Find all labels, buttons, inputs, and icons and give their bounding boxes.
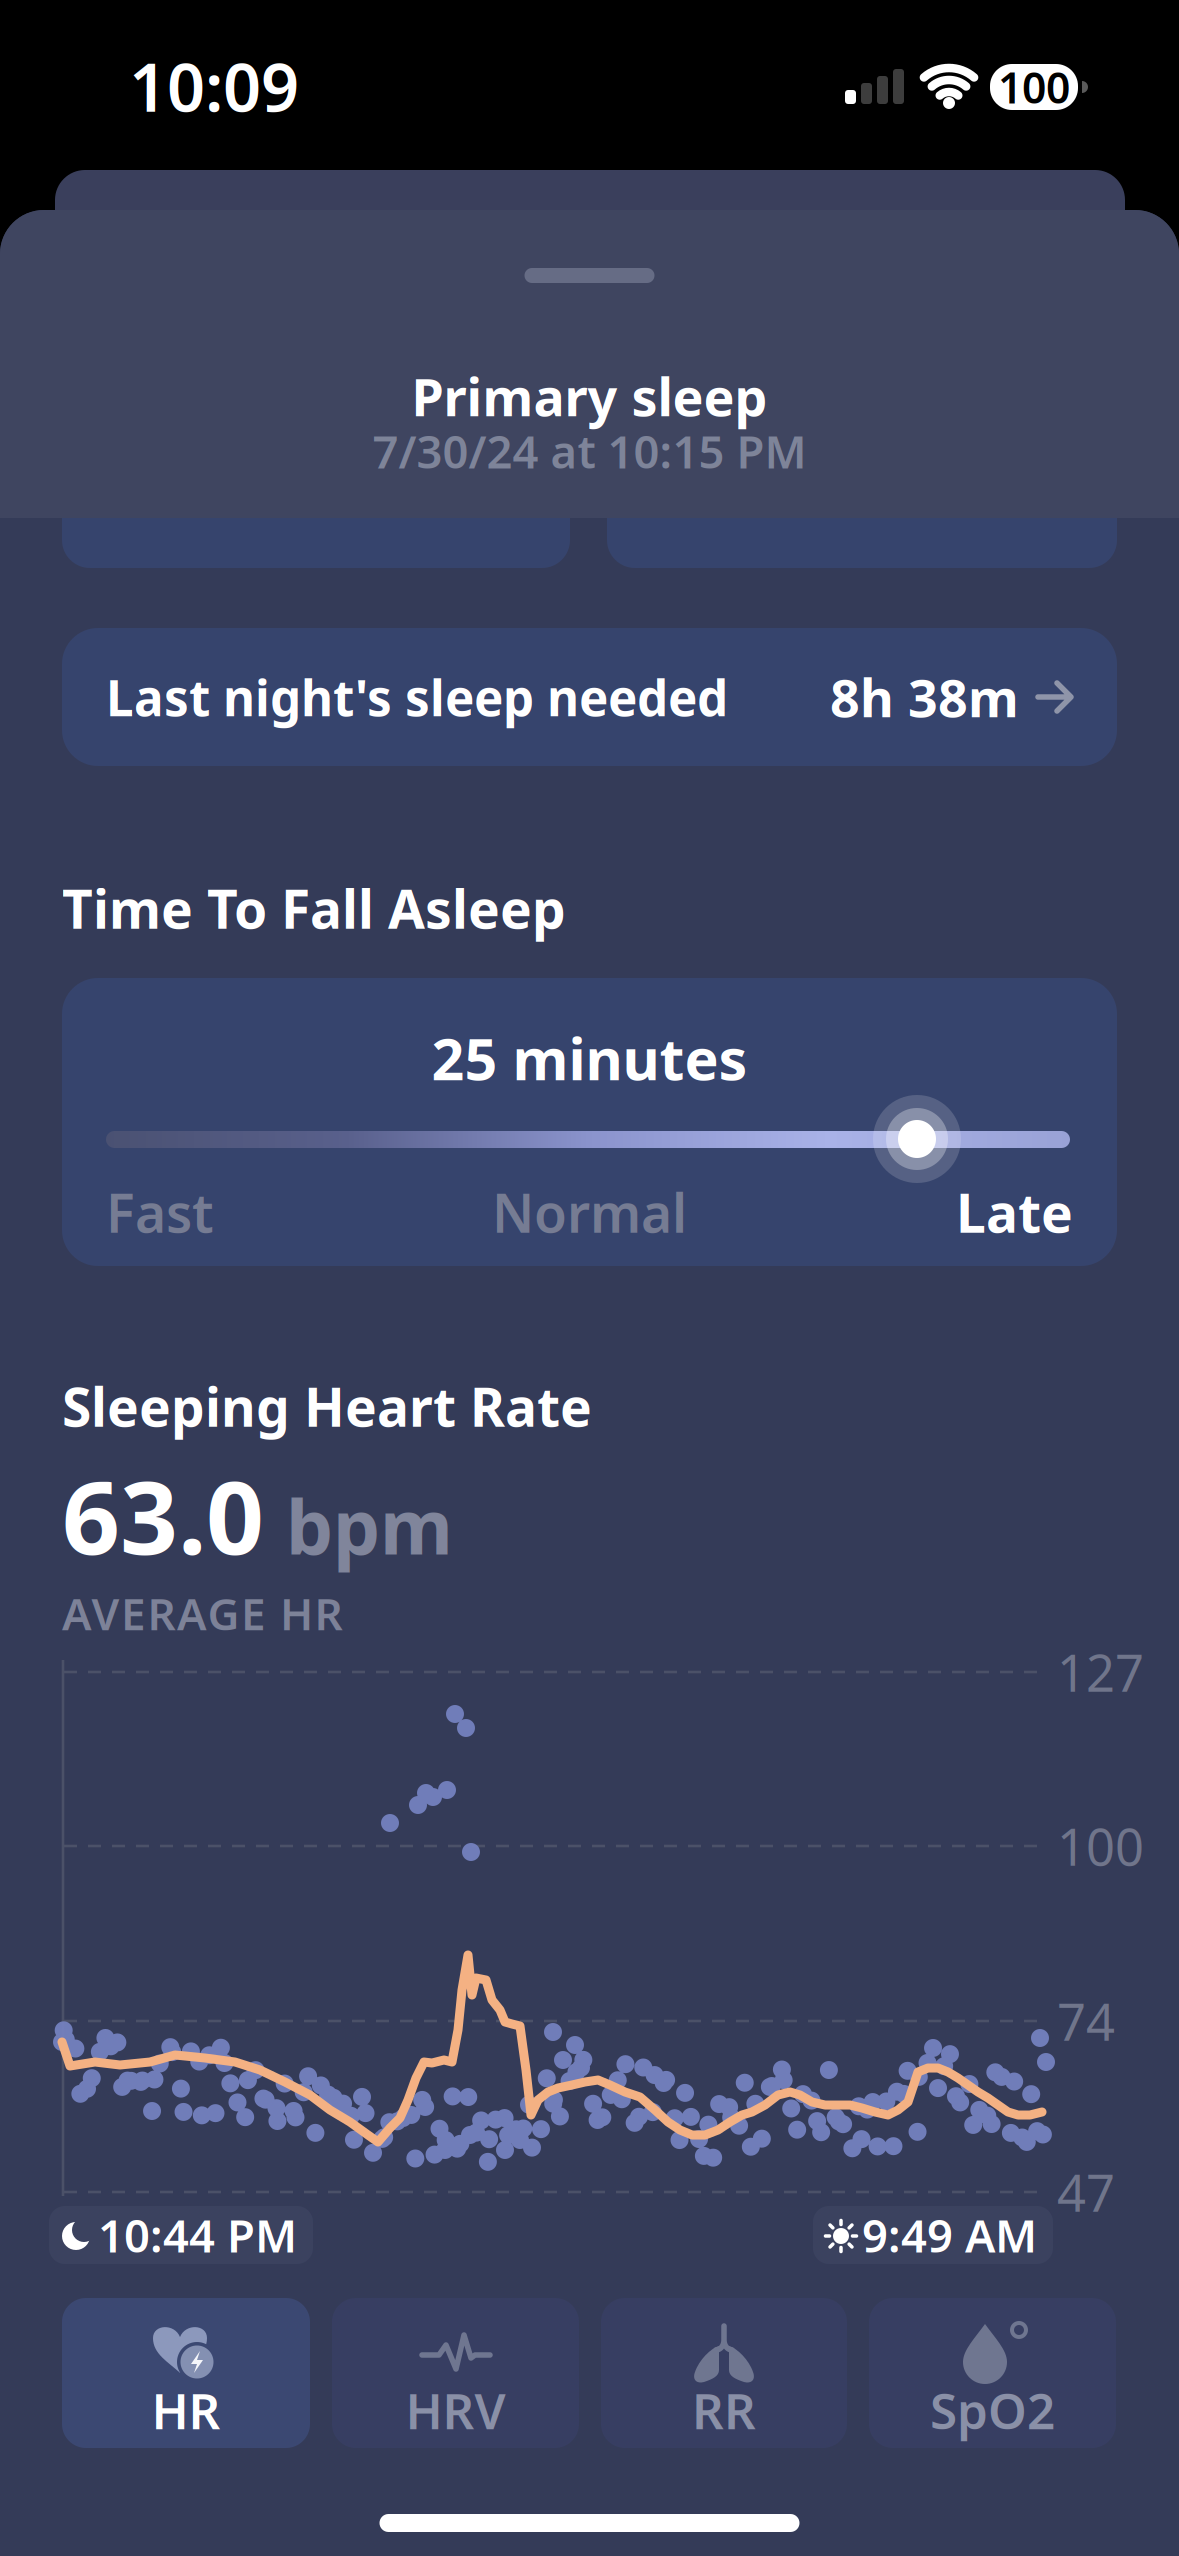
staticText: 9:49 AM: [862, 2205, 1037, 2265]
staticText: Late: [956, 1177, 1073, 1247]
staticText: 100: [1057, 1812, 1144, 1880]
staticText: 127: [1057, 1638, 1144, 1706]
button[interactable]: Last night's sleep needed: [62, 628, 1117, 766]
staticText: 10:44 PM: [98, 2205, 297, 2265]
staticText: 25 minutes: [431, 1020, 747, 1096]
button[interactable]: HRV: [332, 2298, 579, 2448]
staticText: bpm: [286, 1476, 453, 1575]
staticText: Fast: [106, 1177, 214, 1247]
staticText: 100: [998, 59, 1070, 115]
staticText: 63.0: [62, 1448, 264, 1583]
staticText: Time To Fall Asleep: [62, 873, 566, 943]
staticText: Normal: [492, 1177, 687, 1247]
staticText: SpO2: [930, 2377, 1055, 2443]
staticText: HR: [151, 2377, 220, 2443]
staticText: 47: [1057, 2158, 1115, 2226]
staticText: HRV: [405, 2377, 505, 2443]
button[interactable]: HR: [62, 2298, 310, 2448]
staticText: Primary sleep: [411, 361, 767, 431]
staticText: 7/30/24 at 10:15 PM: [372, 421, 806, 481]
button[interactable]: SpO2: [869, 2298, 1116, 2448]
button[interactable]: RR: [601, 2298, 847, 2448]
staticText: 10:09: [129, 42, 299, 130]
staticText: 74: [1057, 1987, 1115, 2055]
staticText: AVERAGE HR: [62, 1584, 342, 1642]
staticText: Sleeping Heart Rate: [62, 1371, 592, 1441]
staticText: RR: [692, 2377, 756, 2443]
staticText: Last night's sleep needed: [106, 664, 728, 730]
staticText: 8h 38m: [830, 662, 1019, 732]
